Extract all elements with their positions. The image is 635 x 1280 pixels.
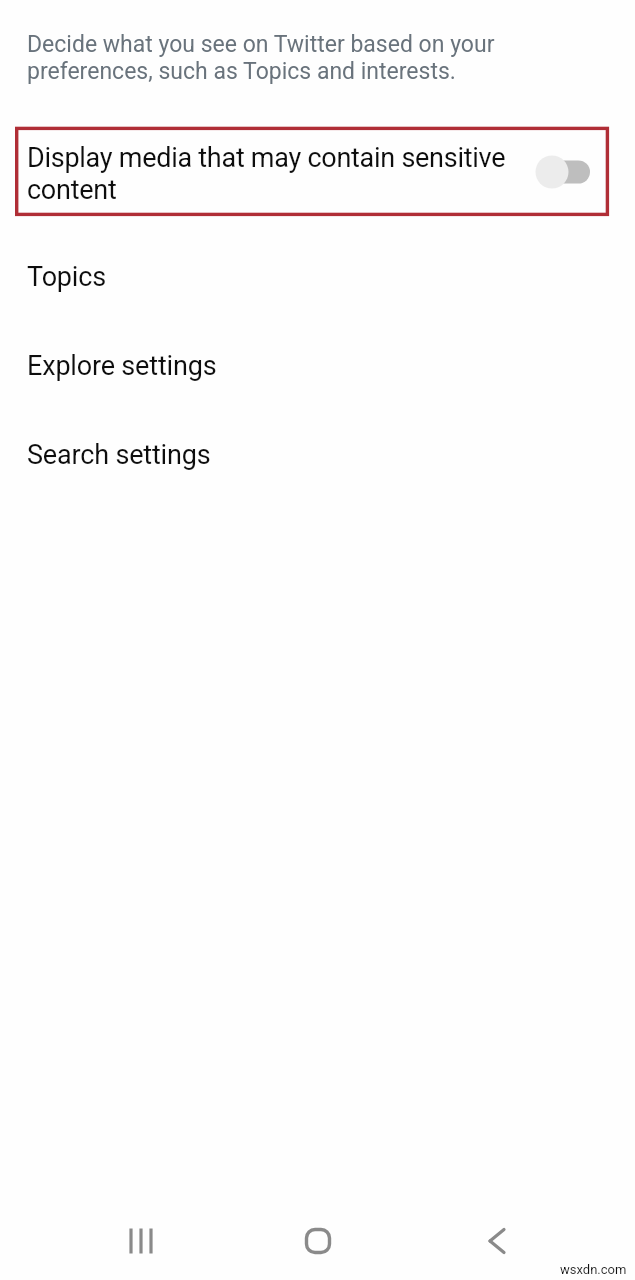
button[interactable]: Explore settings	[0, 321, 635, 410]
staticText: Decide what you see on Twitter based on …	[27, 31, 495, 85]
button[interactable]: Recent apps	[98, 1199, 183, 1280]
staticText: Explore settings	[27, 350, 217, 382]
staticText: Topics	[27, 261, 106, 293]
button[interactable]: Back	[454, 1199, 539, 1280]
button[interactable]: Search settings	[0, 410, 635, 499]
staticText: Display media that may contain sensitive…	[27, 142, 506, 205]
staticText: wsxdn.com	[560, 1262, 627, 1277]
staticText: Search settings	[27, 439, 211, 471]
button[interactable]: Topics	[0, 232, 635, 321]
button[interactable]: Display media that may contain sensitive…	[0, 129, 635, 214]
button[interactable]: Home	[275, 1199, 360, 1280]
